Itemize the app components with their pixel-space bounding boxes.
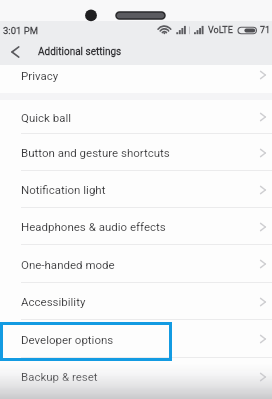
staticText: Quick ball [21, 111, 257, 124]
staticText: Headphones & audio effects [21, 220, 257, 233]
staticText: 71 [260, 25, 271, 36]
button[interactable]: Developer options [0, 320, 272, 358]
button[interactable]: Back [0, 38, 28, 66]
button[interactable]: Privacy [0, 65, 272, 93]
staticText: Backup & reset [21, 370, 257, 383]
staticText: Accessibility [21, 295, 257, 308]
staticText: Notification light [21, 183, 257, 196]
button[interactable]: Backup & reset [0, 358, 272, 395]
staticText: VoLTE [208, 25, 233, 36]
staticText: Additional settings [38, 46, 122, 58]
staticText: Privacy [21, 69, 257, 82]
button[interactable]: Accessibility [0, 283, 272, 320]
staticText: 3:01 PM [3, 25, 38, 36]
button[interactable]: One-handed mode [0, 245, 272, 283]
button[interactable]: Notification light [0, 171, 272, 208]
button[interactable]: Headphones & audio effects [0, 208, 272, 245]
button[interactable]: Button and gesture shortcuts [0, 134, 272, 171]
staticText: One-handed mode [21, 258, 257, 271]
staticText: Developer options [21, 333, 257, 346]
button[interactable]: Quick ball [0, 100, 272, 134]
staticText: Button and gesture shortcuts [21, 146, 257, 159]
